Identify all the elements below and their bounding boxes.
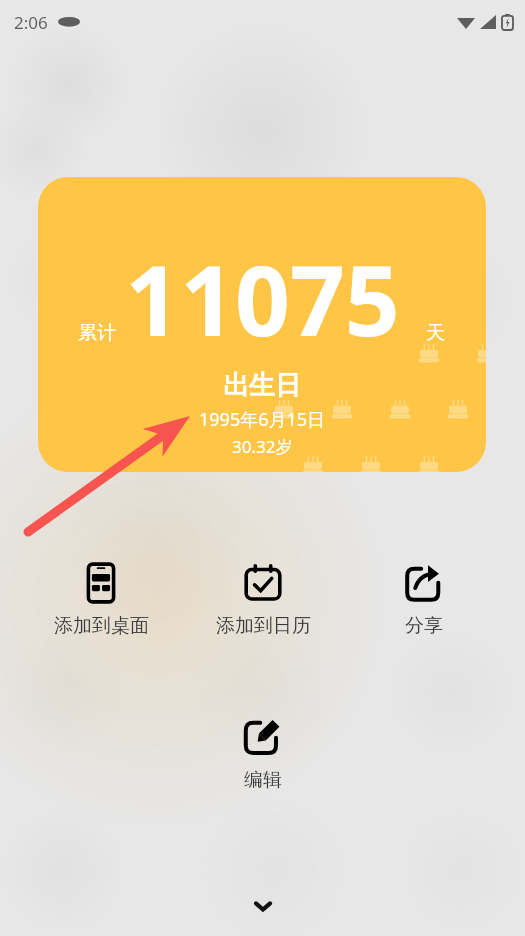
staticText: 出生日 [223,369,301,402]
staticText: 天 [426,321,445,345]
button[interactable]: 添加到日历 [203,556,323,644]
staticText: 分享 [405,614,443,638]
staticText: 1995年6月15日 [199,407,326,432]
staticText: 添加到桌面 [54,614,149,638]
staticText: 2:06 [14,11,48,34]
button[interactable]: 添加到桌面 [41,556,161,644]
staticText: 11075 [125,233,400,364]
button[interactable]: 分享 [364,556,484,644]
button[interactable]: 编辑 [203,710,323,798]
staticText: 30.32岁 [232,435,293,458]
staticText: 累计 [78,321,116,345]
button[interactable]: Collapse [241,884,285,928]
staticText: 编辑 [244,768,282,792]
staticText: 添加到日历 [216,614,311,638]
button[interactable]: 累计 [38,177,486,472]
